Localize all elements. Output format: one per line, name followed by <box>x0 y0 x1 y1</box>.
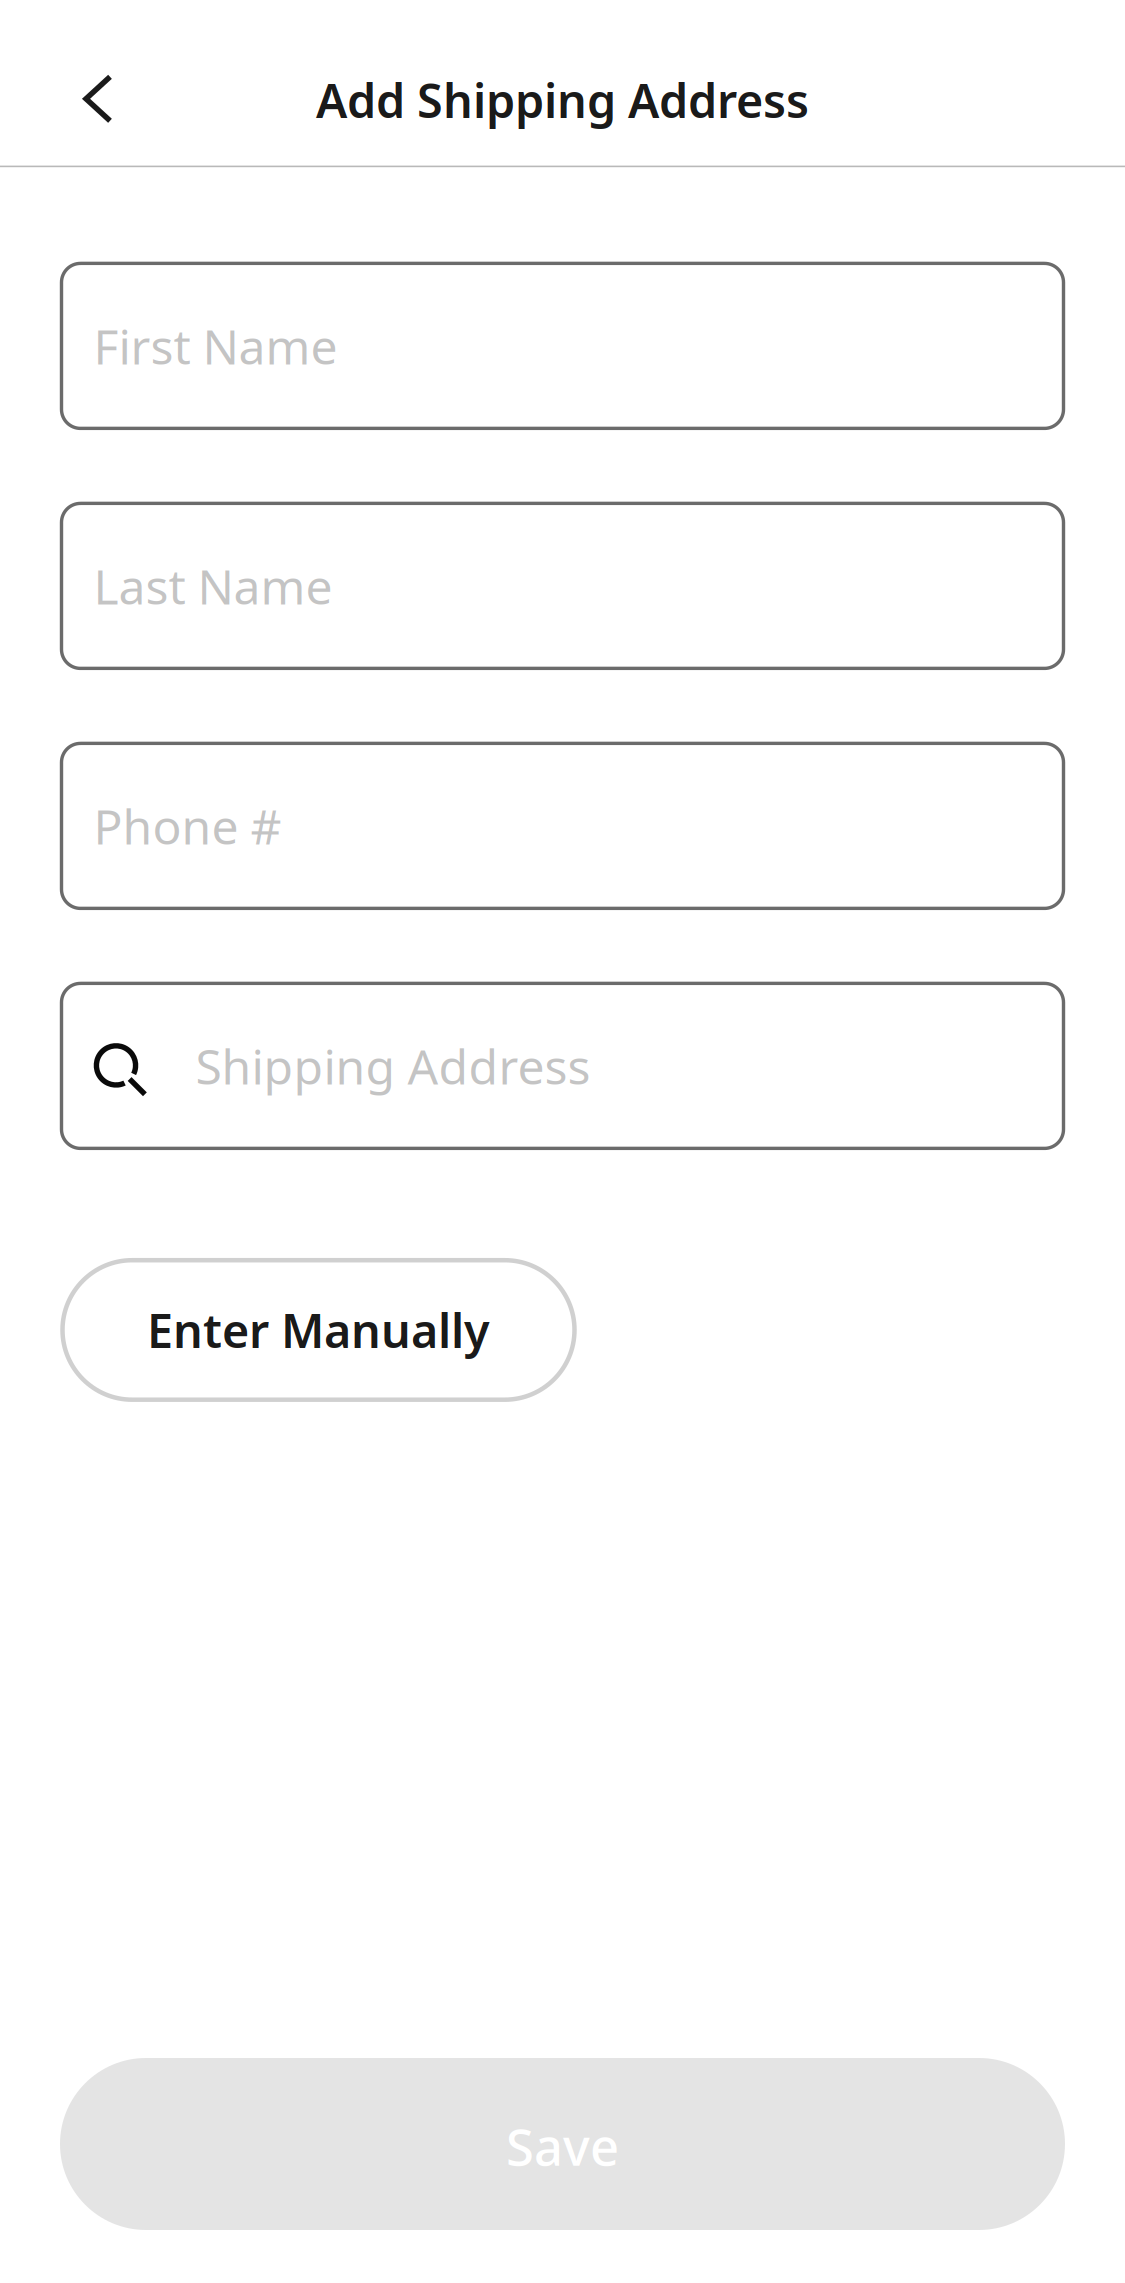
staticText: Enter Manually <box>147 1299 490 1361</box>
button[interactable]: Enter Manually <box>62 1260 574 1400</box>
staticText: Shipping Address <box>195 1034 590 1098</box>
button[interactable]: First Name <box>61 263 1063 428</box>
staticText: Save <box>506 2112 619 2180</box>
button[interactable]: Save <box>60 2058 1065 2230</box>
staticText: Phone # <box>93 794 281 858</box>
button[interactable]: Shipping Address <box>61 983 1063 1148</box>
button[interactable]: Last Name <box>61 503 1063 668</box>
staticText: Last Name <box>93 554 332 618</box>
staticText: Add Shipping Address <box>316 69 809 131</box>
staticText: First Name <box>93 314 337 378</box>
button[interactable]: Back <box>43 44 153 154</box>
button[interactable]: Phone # <box>61 743 1063 908</box>
